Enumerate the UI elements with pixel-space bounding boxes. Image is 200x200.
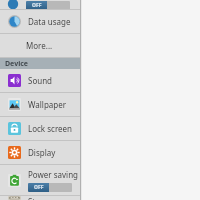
staticText: Display: [28, 147, 56, 158]
staticText: Power saving: [28, 169, 79, 180]
button[interactable]: Data usage: [0, 10, 80, 33]
button[interactable]: More...: [0, 34, 80, 57]
staticText: Sound: [28, 75, 53, 86]
staticText: Device: [5, 59, 29, 69]
staticText: Lock screen: [28, 123, 73, 134]
staticText: OFF: [32, 2, 42, 9]
button[interactable]: Display: [0, 141, 80, 164]
staticText: Wallpaper: [28, 99, 67, 110]
button[interactable]: Toggle off: [0, 0, 80, 9]
button[interactable]: Wallpaper: [0, 93, 80, 116]
staticText: Data usage: [28, 16, 71, 27]
button[interactable]: Sound: [0, 69, 80, 92]
staticText: More...: [26, 40, 53, 51]
button[interactable]: Storage: [0, 196, 80, 200]
button[interactable]: Lock screen: [0, 117, 80, 140]
button[interactable]: Toggle off: [28, 183, 72, 192]
button[interactable]: Toggle off: [26, 1, 70, 10]
staticText: Storage: [28, 196, 58, 200]
button[interactable]: Power saving: [0, 165, 80, 195]
staticText: OFF: [34, 184, 44, 191]
